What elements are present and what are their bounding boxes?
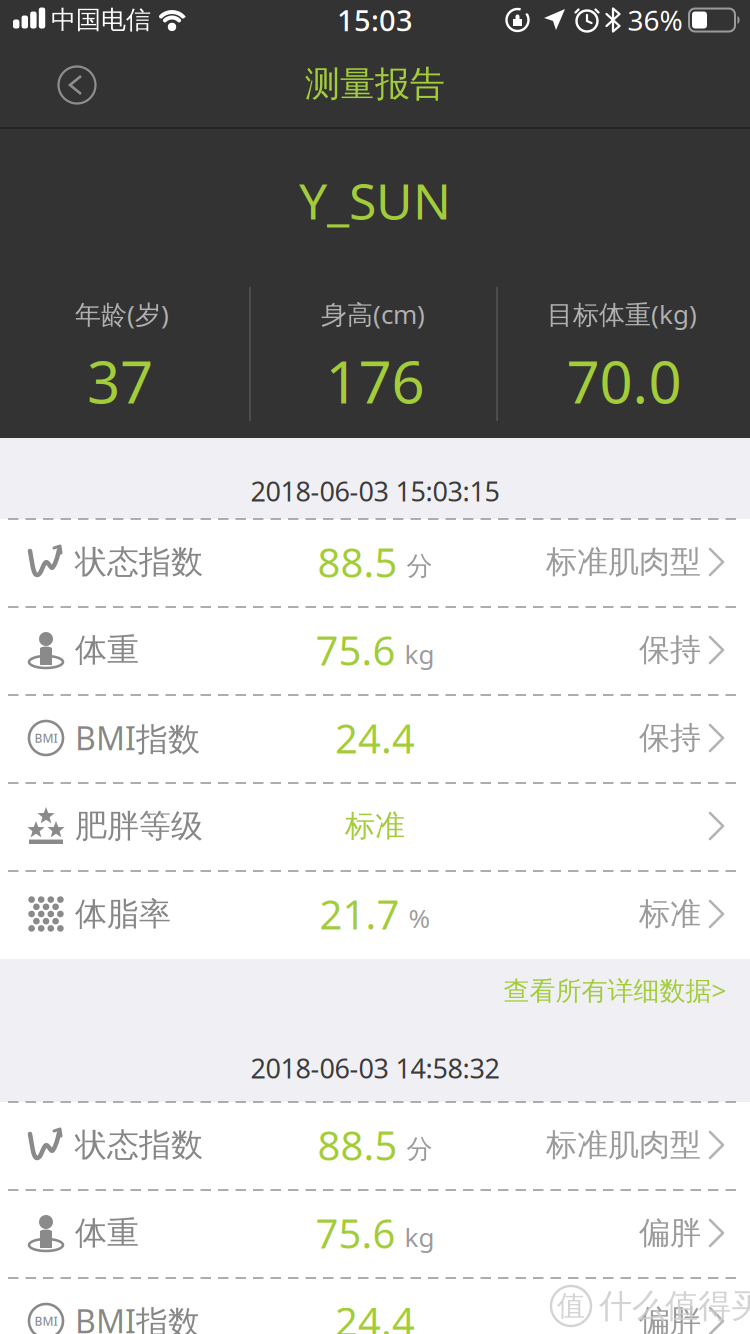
staticText: 体重	[75, 1213, 139, 1253]
button[interactable]: 肥胖等级	[0, 783, 750, 869]
staticText: 37	[87, 342, 153, 419]
staticText: 什么值得买	[599, 1286, 750, 1326]
button[interactable]: Back	[57, 65, 97, 105]
staticText: 21.7	[319, 887, 399, 940]
button[interactable]: BMI	[0, 1278, 750, 1334]
staticText: 状态指数	[75, 542, 203, 582]
staticText: 2018-06-03 15:03:15	[250, 473, 499, 509]
staticText: 保持	[639, 631, 701, 669]
staticText: 保持	[639, 719, 701, 757]
staticText: 70.0	[566, 342, 681, 419]
staticText: 24.4	[335, 711, 415, 764]
staticText: 标准	[639, 895, 701, 933]
staticText: 年龄(岁)	[75, 297, 169, 331]
staticText: %	[408, 901, 430, 935]
button[interactable]: 体脂率	[0, 871, 750, 957]
staticText: 75.6	[315, 1206, 395, 1259]
staticText: 身高(cm)	[321, 297, 425, 331]
staticText: BMI	[34, 730, 57, 746]
button[interactable]: BMI	[0, 695, 750, 781]
staticText: 偏胖	[639, 1302, 701, 1334]
button[interactable]: 查看所有详细数据>	[503, 973, 726, 1007]
staticText: 176	[325, 342, 424, 419]
staticText: 中国电信	[51, 5, 151, 35]
staticText: BMI指数	[75, 1300, 200, 1334]
staticText: 查看所有详细数据>	[503, 973, 726, 1007]
staticText: 75.6	[315, 623, 395, 676]
staticText: 体重	[75, 630, 139, 670]
staticText: 状态指数	[75, 1125, 203, 1165]
staticText: 2018-06-03 14:58:32	[250, 1050, 499, 1086]
staticText: kg	[404, 637, 434, 671]
staticText: 目标体重(kg)	[547, 297, 697, 331]
button[interactable]: 状态指数	[0, 519, 750, 605]
button[interactable]: 状态指数	[0, 1102, 750, 1188]
staticText: 测量报告	[305, 62, 445, 105]
staticText: BMI	[34, 1313, 57, 1329]
staticText: BMI指数	[75, 717, 200, 759]
staticText: 肥胖等级	[75, 806, 203, 846]
staticText: 分	[406, 1133, 432, 1165]
button[interactable]: 体重	[0, 1190, 750, 1276]
staticText: kg	[404, 1220, 434, 1254]
staticText: 体脂率	[75, 894, 171, 934]
staticText: 88.5	[317, 535, 397, 588]
staticText: 值	[557, 1289, 585, 1323]
staticText: 标准	[345, 808, 405, 844]
staticText: 36%	[627, 1, 682, 39]
button[interactable]: 体重	[0, 607, 750, 693]
staticText: 15:03	[337, 1, 413, 39]
staticText: 标准肌肉型	[546, 543, 701, 581]
staticText: Y_SUN	[299, 167, 451, 233]
staticText: 24.4	[335, 1294, 415, 1334]
staticText: 88.5	[317, 1118, 397, 1171]
staticText: 标准肌肉型	[546, 1126, 701, 1164]
staticText: 偏胖	[639, 1214, 701, 1252]
staticText: 分	[406, 550, 432, 582]
